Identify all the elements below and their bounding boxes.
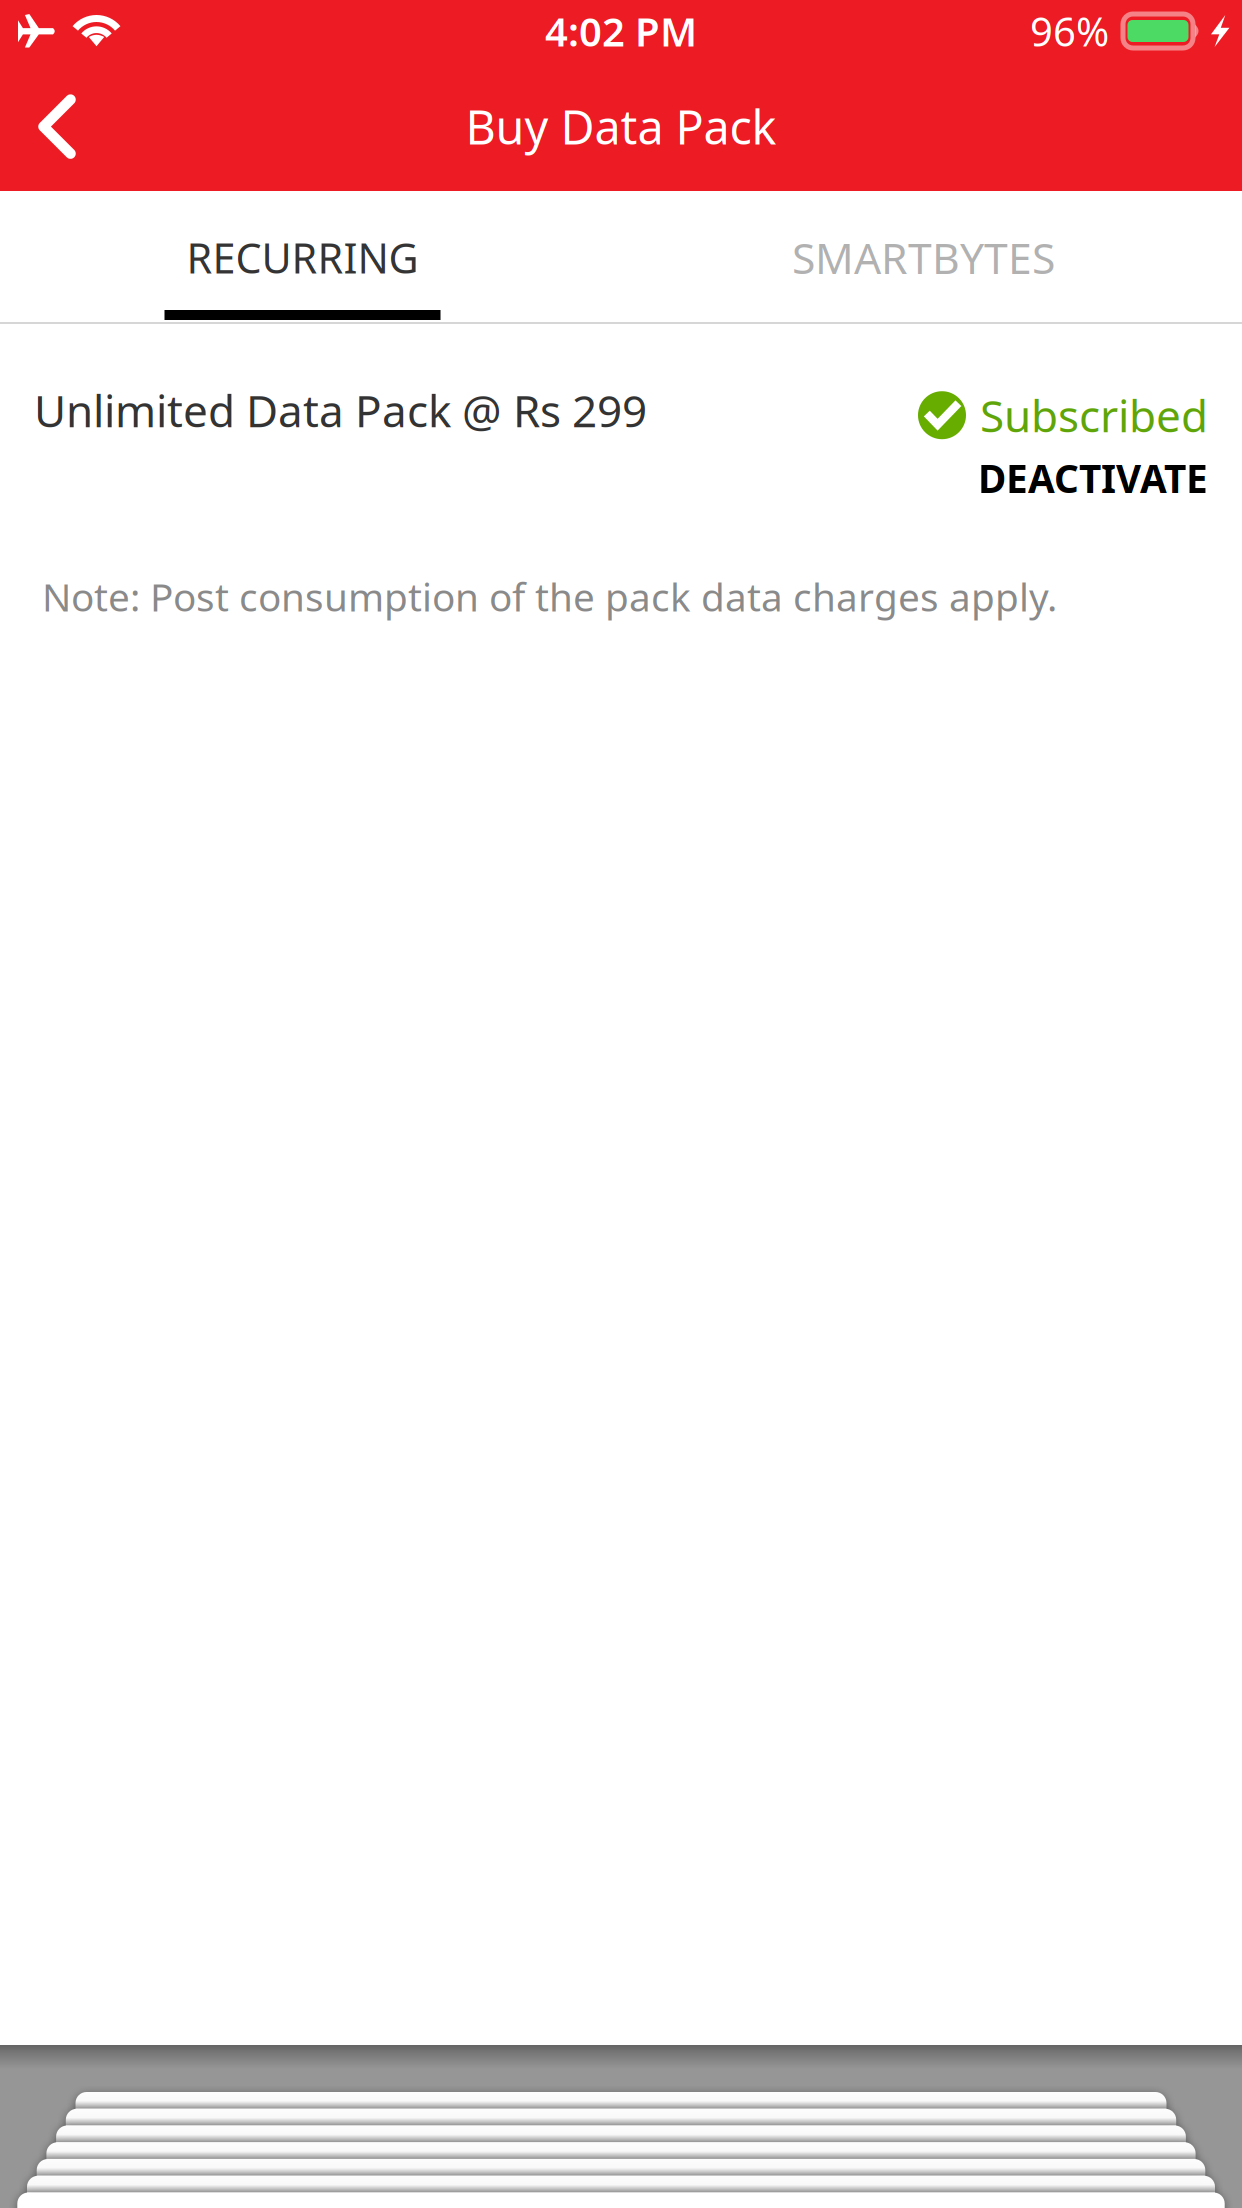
staticText: RECURRING <box>186 230 418 285</box>
button[interactable]: DEACTIVATE <box>978 452 1208 504</box>
staticText: Subscribed <box>980 386 1208 444</box>
staticText: SMARTBYTES <box>792 229 1055 286</box>
staticText: Buy Data Pack <box>465 95 776 157</box>
staticText: 96% <box>1030 4 1109 57</box>
button[interactable]: SMARTBYTES <box>621 191 1242 322</box>
button[interactable]: Back <box>0 62 109 191</box>
staticText: 4:02 PM <box>545 4 697 57</box>
button[interactable]: RECURRING <box>0 191 621 322</box>
staticText: Unlimited Data Pack @ Rs 299 <box>34 381 647 439</box>
button[interactable]: Unlimited Data Pack @ Rs 299 <box>0 324 647 439</box>
staticText: Note: Post consumption of the pack data … <box>42 571 1057 622</box>
staticText: DEACTIVATE <box>978 452 1208 504</box>
